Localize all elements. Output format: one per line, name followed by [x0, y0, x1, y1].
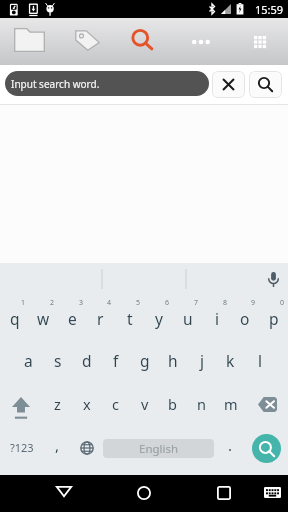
button[interactable]: Grid view	[240, 18, 280, 65]
staticText: n	[197, 394, 206, 414]
button[interactable]: Backspace	[247, 382, 288, 425]
staticText: k	[226, 350, 235, 371]
button[interactable]: 3	[58, 294, 87, 337]
staticText: x	[83, 394, 91, 414]
staticText: y	[155, 308, 163, 329]
button[interactable]: 6	[144, 294, 173, 337]
button[interactable]: Search	[120, 18, 164, 65]
button[interactable]: m	[216, 381, 245, 424]
staticText: q	[10, 308, 20, 329]
button[interactable]: Search	[252, 434, 281, 463]
staticText: z	[54, 394, 61, 414]
staticText: g	[140, 350, 150, 371]
button[interactable]: h	[158, 338, 187, 381]
staticText: e	[68, 308, 77, 329]
button[interactable]: 4	[86, 294, 115, 337]
staticText: 6	[165, 298, 170, 308]
staticText: s	[54, 350, 62, 371]
button[interactable]: n	[187, 381, 216, 424]
staticText: m	[224, 394, 238, 414]
button[interactable]: 5	[115, 294, 144, 337]
staticText: 0	[280, 298, 285, 308]
button[interactable]: Recent apps	[202, 475, 246, 512]
button[interactable]: ,	[43, 425, 71, 468]
button[interactable]: Voice input	[258, 263, 288, 294]
button[interactable]: l	[245, 338, 274, 381]
button[interactable]: Change keyboard language	[73, 425, 101, 468]
button[interactable]: .	[217, 425, 243, 468]
button[interactable]: ?123	[2, 425, 41, 468]
staticText: v	[141, 394, 149, 414]
button[interactable]: 1	[0, 294, 29, 337]
staticText: d	[82, 350, 92, 371]
staticText: .	[228, 435, 233, 455]
button[interactable]: d	[72, 338, 101, 381]
staticText: 3	[79, 298, 84, 308]
button[interactable]: Clear	[212, 71, 245, 98]
button[interactable]: Back	[42, 475, 86, 512]
button[interactable]: j	[187, 338, 216, 381]
staticText: j	[200, 350, 204, 371]
staticText: 7	[194, 298, 199, 308]
staticText: u	[183, 308, 193, 329]
staticText: b	[168, 394, 177, 414]
button[interactable]: Shift	[0, 382, 41, 425]
button[interactable]: s	[43, 338, 72, 381]
staticText: o	[240, 308, 250, 329]
button[interactable]: a	[14, 338, 43, 381]
staticText: i	[215, 308, 219, 329]
staticText: 1	[21, 298, 26, 308]
button[interactable]: k	[216, 338, 245, 381]
button[interactable]: g	[130, 338, 159, 381]
button[interactable]: b	[158, 381, 187, 424]
button[interactable]: Switch keyboard	[252, 475, 288, 512]
button[interactable]: Home	[122, 475, 166, 512]
button[interactable]: c	[101, 381, 130, 424]
button[interactable]: Input search word.	[5, 71, 209, 96]
staticText: Input search word.	[11, 77, 100, 91]
button[interactable]: Folders	[7, 18, 51, 65]
staticText: ?123	[10, 440, 34, 455]
staticText: 4	[107, 298, 112, 308]
button[interactable]: v	[130, 381, 159, 424]
button[interactable]: x	[72, 381, 101, 424]
staticText: l	[258, 350, 262, 371]
button[interactable]: f	[101, 338, 130, 381]
button[interactable]: Tags	[65, 18, 109, 65]
staticText: 9	[251, 298, 256, 308]
staticText: a	[24, 350, 33, 371]
staticText: h	[168, 350, 178, 371]
button[interactable]: 8	[202, 294, 231, 337]
staticText: w	[37, 308, 50, 329]
staticText: r	[97, 308, 104, 329]
button[interactable]: Search	[249, 71, 282, 98]
staticText: 15:59	[255, 2, 284, 17]
button[interactable]: 0	[259, 294, 288, 337]
staticText: f	[113, 350, 119, 371]
button[interactable]: 2	[29, 294, 58, 337]
staticText: c	[112, 394, 119, 414]
staticText: English	[139, 441, 179, 457]
staticText: 2	[50, 298, 55, 308]
staticText: p	[269, 308, 279, 329]
staticText: 5	[136, 298, 141, 308]
staticText: t	[127, 308, 133, 329]
button[interactable]: More options	[180, 18, 222, 65]
button[interactable]: z	[43, 381, 72, 424]
staticText: 8	[223, 298, 228, 308]
button[interactable]: 9	[230, 294, 259, 337]
staticText: ,	[55, 435, 60, 455]
button[interactable]: English	[103, 439, 214, 458]
button[interactable]: 7	[173, 294, 202, 337]
